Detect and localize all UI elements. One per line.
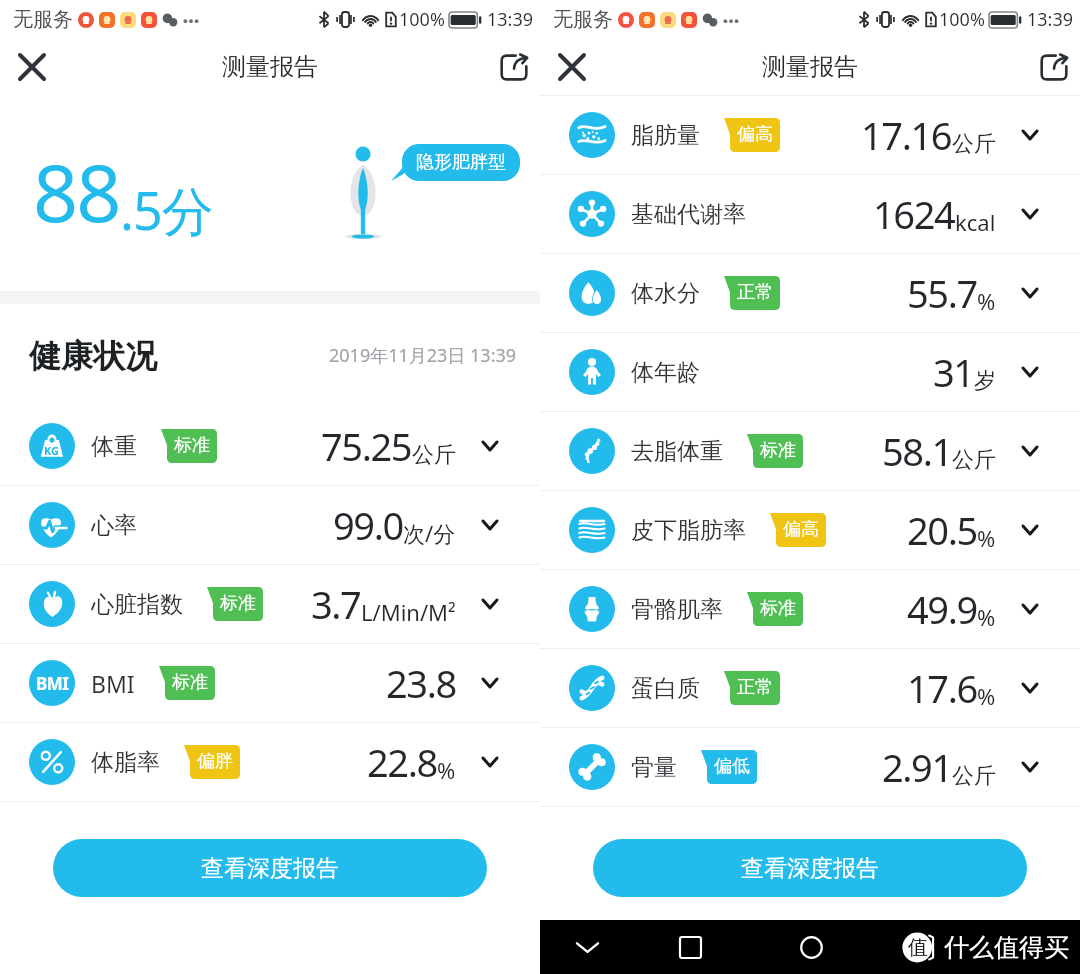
staticText: 100% [939,7,985,32]
button[interactable]: 基础代谢率 [540,175,1080,253]
button[interactable]: Close [549,44,595,90]
staticText: 公斤 [952,446,996,474]
staticText: 脂肪量 [631,121,700,150]
staticText: 蛋白质 [631,674,700,703]
staticText: 什么值得买 [944,932,1069,963]
staticText: 正常 [737,676,773,699]
button[interactable]: 心率 [0,486,540,564]
staticText: 骨量 [631,753,677,782]
staticText: 22.8 [367,736,437,788]
button[interactable]: 蛋白质 [540,649,1080,727]
button[interactable]: 体脂率 [0,723,540,801]
staticText: 17.16 [861,109,952,161]
staticText: 公斤 [952,762,996,790]
staticText: 标准 [760,439,796,462]
staticText: 标准 [760,597,796,620]
button[interactable]: 骨骼肌率 [540,570,1080,648]
staticText: 100% [399,7,445,32]
staticText: 体水分 [631,279,700,308]
button[interactable]: 查看深度报告 [593,839,1027,897]
button[interactable]: Recents [668,925,712,969]
button[interactable]: BMI [0,644,540,722]
staticText: 标准 [220,592,256,615]
button[interactable]: 脂肪量 [540,96,1080,174]
staticText: 岁 [974,367,996,395]
staticText: 17.6 [907,662,977,714]
staticText: % [437,755,456,785]
staticText: 20.5 [907,504,977,556]
staticText: 55.7 [907,267,977,319]
staticText: 13:39 [1027,7,1074,32]
staticText: 偏高 [737,123,773,146]
staticText: L/Min/M² [361,597,456,627]
staticText: 查看深度报告 [201,854,339,883]
button[interactable]: Share [1030,43,1078,91]
staticText: KG [44,443,60,458]
button[interactable]: Share [490,43,538,91]
staticText: 心率 [91,511,137,540]
staticText: 无服务 [553,7,613,32]
staticText: BMI [36,672,69,695]
staticText: 公斤 [952,130,996,158]
staticText: % [977,602,996,632]
button[interactable]: KG [0,407,540,485]
button[interactable]: Back [565,925,609,969]
staticText: 体脂率 [91,748,160,777]
staticText: 体年龄 [631,358,700,387]
staticText: 1624 [873,188,955,240]
button[interactable]: 心脏指数 [0,565,540,643]
button[interactable]: 骨量 [540,728,1080,806]
staticText: 去脂体重 [631,437,723,466]
button[interactable]: 去脂体重 [540,412,1080,490]
button[interactable]: Close [9,44,55,90]
staticText: 99.0 [333,499,403,551]
staticText: 偏高 [783,518,819,541]
staticText: 骨骼肌率 [631,595,723,624]
button[interactable]: 体年龄 [540,333,1080,411]
staticText: 标准 [174,434,210,457]
staticText: BMI [91,668,135,699]
staticText: % [977,523,996,553]
staticText: 体重 [91,432,137,461]
button[interactable]: 体水分 [540,254,1080,332]
staticText: 测量报告 [762,52,858,82]
staticText: % [977,286,996,316]
staticText: 无服务 [13,7,73,32]
staticText: 公斤 [412,441,456,469]
staticText: 31 [933,346,974,398]
staticText: kcal [955,207,996,237]
staticText: 标准 [172,671,208,694]
staticText: 23.8 [386,657,456,709]
staticText: 值 [908,935,928,960]
staticText: 2.91 [882,741,952,793]
staticText: 2019年11月23日 13:39 [329,343,517,368]
button[interactable]: 皮下脂肪率 [540,491,1080,569]
staticText: 心脏指数 [91,590,183,619]
staticText: 基础代谢率 [631,200,746,229]
staticText: % [977,681,996,711]
staticText: 次/分 [403,518,456,548]
staticText: 88 [33,138,120,246]
staticText: .5分 [120,174,213,245]
staticText: 隐形肥胖型 [416,151,506,174]
staticText: 健康状况 [29,336,157,376]
staticText: 皮下脂肪率 [631,516,746,545]
staticText: 偏低 [714,755,750,778]
staticText: 58.1 [882,425,952,477]
staticText: 49.9 [907,583,977,635]
staticText: 13:39 [487,7,534,32]
staticText: 75.25 [321,420,412,472]
staticText: 查看深度报告 [741,854,879,883]
staticText: 测量报告 [222,52,318,82]
button[interactable]: 查看深度报告 [53,839,487,897]
staticText: 3.7 [311,578,361,630]
staticText: 正常 [737,281,773,304]
button[interactable]: Home [789,925,833,969]
staticText: 偏胖 [197,750,233,773]
